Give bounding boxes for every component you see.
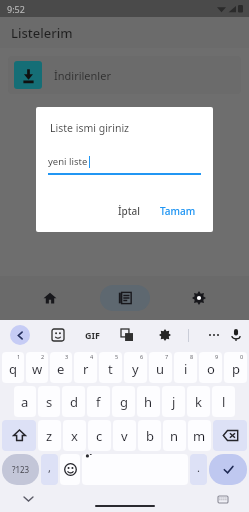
staticText: 3: [65, 353, 69, 360]
button[interactable]: Emoji: [60, 454, 80, 485]
staticText: 1: [17, 353, 21, 360]
button[interactable]: o: [199, 352, 222, 383]
button[interactable]: Switch keyboard: [215, 491, 231, 507]
button[interactable]: Tamam: [153, 200, 203, 222]
button[interactable]: Translate: [116, 324, 138, 346]
staticText: g: [120, 393, 128, 411]
staticText: o: [207, 360, 215, 378]
staticText: r: [83, 360, 89, 378]
button[interactable]: w: [26, 352, 48, 383]
staticText: 9:52: [7, 3, 25, 15]
button[interactable]: j: [162, 386, 185, 417]
staticText: m: [193, 427, 206, 445]
button[interactable]: s: [38, 386, 60, 417]
staticText: 6: [140, 353, 144, 360]
staticText: 5: [115, 353, 119, 360]
button[interactable]: Back: [10, 325, 30, 345]
button[interactable]: r: [74, 352, 97, 383]
staticText: Listelerim: [11, 24, 73, 42]
button[interactable]: f: [87, 386, 110, 417]
button[interactable]: Settings: [174, 285, 224, 311]
staticText: x: [71, 427, 78, 445]
staticText: 8: [190, 353, 194, 360]
button[interactable]: İndirilenler: [8, 56, 241, 94]
button[interactable]: Space: [82, 454, 188, 485]
staticText: f: [96, 393, 101, 411]
button[interactable]: Keyboard settings: [154, 324, 176, 346]
staticText: 0: [240, 353, 244, 360]
button[interactable]: y: [124, 352, 147, 383]
staticText: ?123: [12, 464, 30, 475]
button[interactable]: e: [50, 352, 72, 383]
button[interactable]: İptal: [111, 200, 147, 222]
staticText: GIF: [85, 329, 100, 341]
button[interactable]: q: [2, 352, 24, 383]
staticText: s: [46, 393, 53, 411]
staticText: e: [57, 360, 65, 378]
staticText: p: [232, 360, 240, 378]
button[interactable]: Backspace: [213, 420, 247, 451]
button[interactable]: d: [62, 386, 85, 417]
button[interactable]: u: [149, 352, 172, 383]
staticText: b: [146, 427, 154, 445]
staticText: n: [170, 427, 179, 445]
staticText: u: [156, 360, 165, 378]
button[interactable]: GIF: [85, 329, 100, 341]
staticText: a: [21, 393, 29, 411]
staticText: c: [96, 427, 103, 445]
button[interactable]: Voice input: [225, 324, 247, 346]
button[interactable]: l: [212, 386, 235, 417]
button[interactable]: x: [63, 420, 86, 451]
button[interactable]: a: [14, 386, 36, 417]
staticText: z: [46, 427, 53, 445]
staticText: y: [132, 360, 139, 378]
button[interactable]: k: [187, 386, 210, 417]
button[interactable]: Enter: [209, 454, 247, 485]
button[interactable]: t: [99, 352, 122, 383]
staticText: İndirilenler: [54, 68, 111, 83]
staticText: ,: [48, 460, 51, 475]
button[interactable]: Hide keyboard: [20, 491, 36, 507]
staticText: 7: [165, 353, 169, 360]
button[interactable]: c: [88, 420, 111, 451]
button[interactable]: More options: [203, 324, 225, 346]
button[interactable]: Stickers: [47, 324, 69, 346]
button[interactable]: g: [112, 386, 135, 417]
button[interactable]: v: [113, 420, 136, 451]
staticText: k: [195, 393, 202, 411]
button[interactable]: ,: [41, 454, 58, 485]
staticText: .: [197, 460, 200, 475]
staticText: h: [144, 393, 153, 411]
button[interactable]: z: [38, 420, 61, 451]
button[interactable]: Home: [25, 285, 75, 311]
button[interactable]: i: [174, 352, 197, 383]
staticText: Liste ismi giriniz: [50, 121, 130, 135]
staticText: yeni liste: [48, 155, 88, 168]
staticText: Tamam: [160, 204, 196, 218]
staticText: v: [121, 427, 128, 445]
button[interactable]: Shift: [2, 420, 36, 451]
button[interactable]: ?123: [2, 454, 39, 485]
staticText: 2: [41, 353, 45, 360]
button[interactable]: b: [138, 420, 161, 451]
button[interactable]: h: [137, 386, 160, 417]
staticText: 9: [215, 353, 219, 360]
staticText: l: [222, 393, 226, 411]
button[interactable]: .: [190, 454, 207, 485]
staticText: t: [108, 360, 113, 378]
staticText: d: [70, 393, 78, 411]
staticText: w: [32, 360, 43, 378]
button[interactable]: m: [188, 420, 211, 451]
button[interactable]: n: [163, 420, 186, 451]
staticText: i: [184, 360, 188, 378]
staticText: q: [9, 360, 17, 378]
staticText: j: [172, 393, 176, 411]
staticText: 4: [90, 353, 94, 360]
staticText: İptal: [118, 204, 140, 218]
button[interactable]: p: [224, 352, 247, 383]
button[interactable]: Lists: [100, 285, 150, 311]
